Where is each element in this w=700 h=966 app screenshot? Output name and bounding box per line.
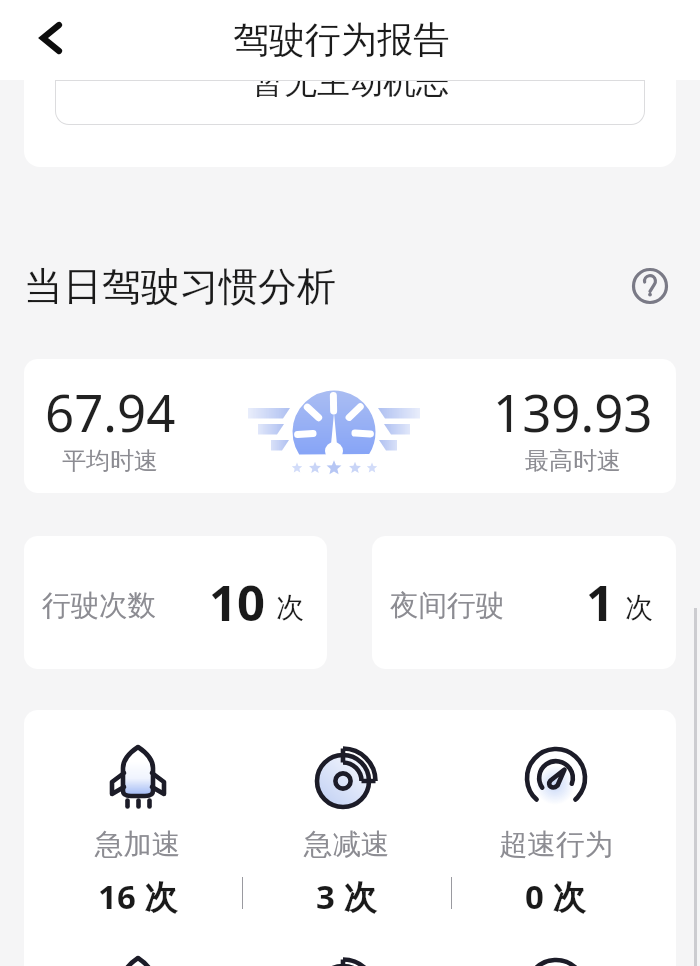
button[interactable]: 急转弯 [242, 949, 451, 966]
staticText: 16 次 [98, 874, 178, 919]
staticText: 平均时速 [62, 446, 158, 476]
button[interactable]: 疲劳驾驶 [34, 949, 242, 966]
staticText: 67.94 [45, 377, 176, 446]
staticText: 10 [209, 569, 266, 636]
staticText: 当日驾驶习惯分析 [24, 262, 336, 311]
staticText: 次 [276, 590, 304, 625]
staticText: 最高时速 [525, 446, 621, 476]
button[interactable]: 行驶次数 [24, 536, 327, 669]
staticText: 0 次 [525, 874, 586, 919]
staticText: 驾驶行为报告 [233, 17, 449, 62]
staticText: 暂无主动机恶 [251, 80, 449, 103]
staticText: 1 [586, 569, 615, 636]
staticText: 3 次 [316, 874, 377, 919]
button[interactable]: 急减速 [242, 738, 451, 919]
staticText: 超速行为 [499, 827, 613, 863]
staticText: 139.93 [493, 377, 653, 446]
staticText: 行驶次数 [42, 588, 156, 624]
staticText: 夜间行驶 [390, 588, 504, 624]
button[interactable]: Help [631, 267, 669, 305]
button[interactable]: 急加速 [34, 738, 242, 919]
button[interactable]: Back [18, 0, 80, 75]
staticText: 次 [625, 590, 653, 625]
button[interactable]: 夜间行驶 [372, 536, 676, 669]
staticText: 急加速 [95, 827, 181, 863]
button[interactable]: 超速行为 [451, 738, 660, 919]
staticText: 急减速 [304, 827, 390, 863]
button[interactable]: 怠速预警 [451, 949, 660, 966]
